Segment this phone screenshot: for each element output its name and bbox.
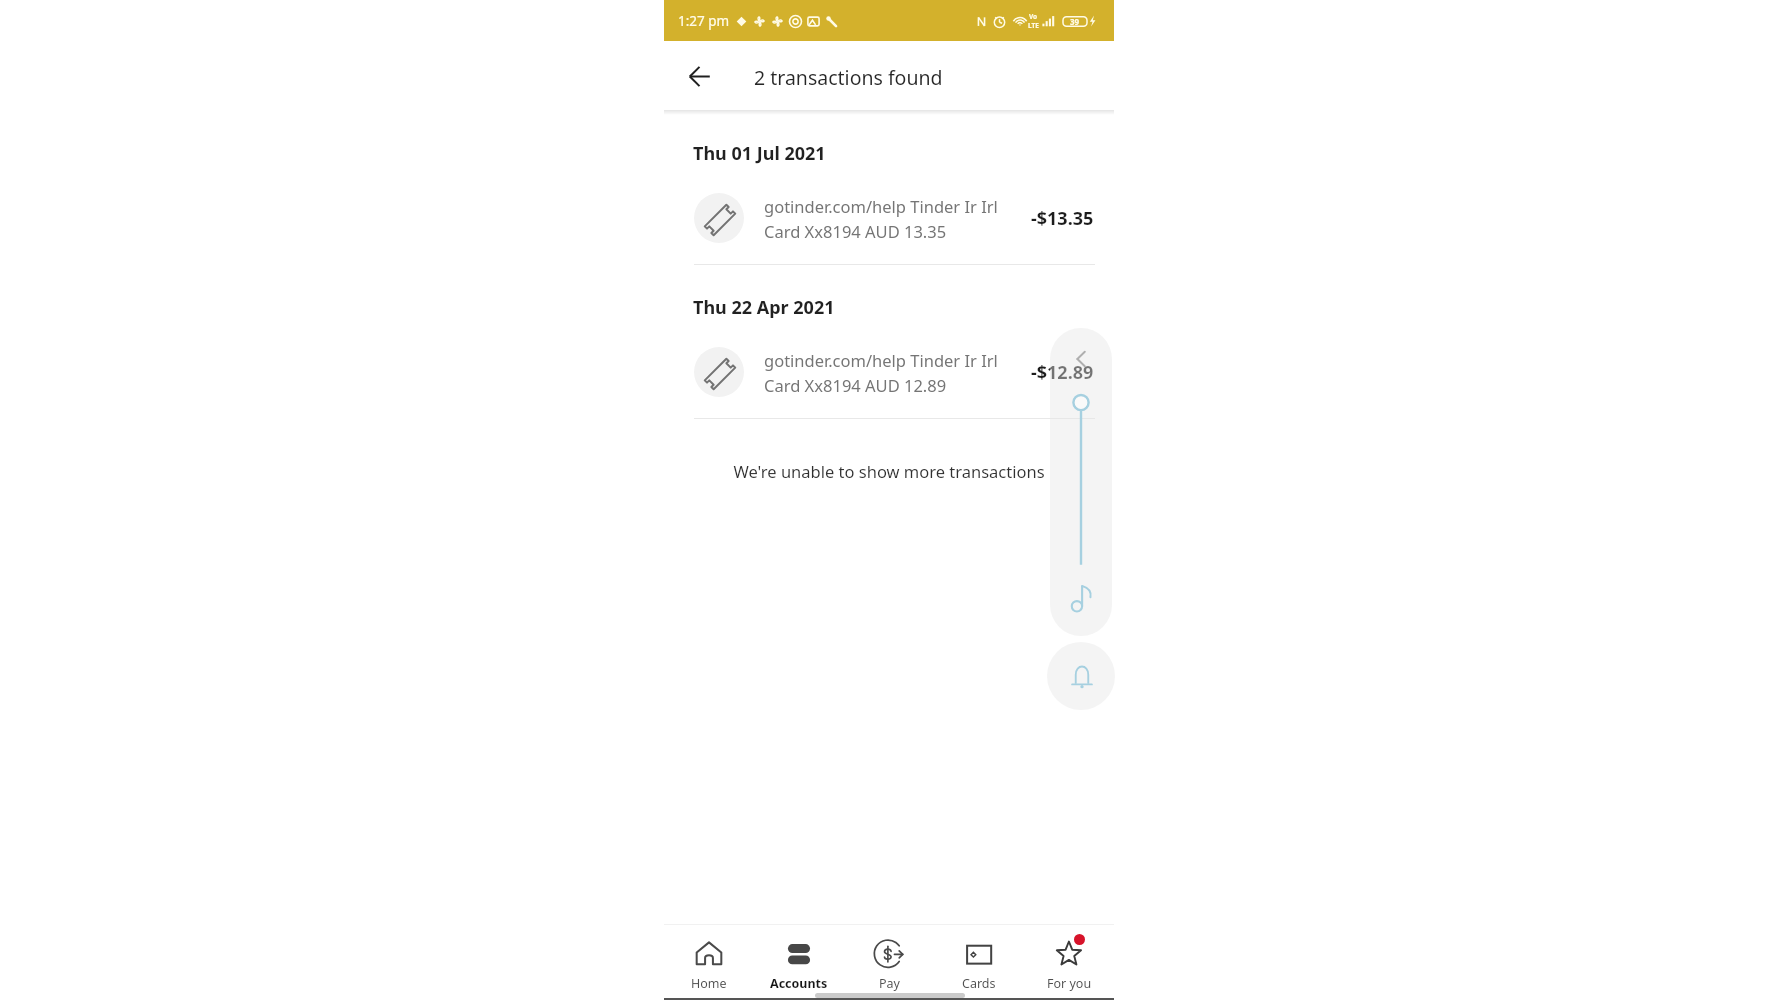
staticText: Thu 01 Jul 2021 xyxy=(693,141,826,166)
staticText: Home xyxy=(691,975,727,992)
staticText: Cards xyxy=(962,975,996,992)
button[interactable]: Volume xyxy=(1050,328,1112,636)
staticText: LTE xyxy=(1028,21,1039,30)
staticText: 1:27 pm xyxy=(678,12,730,30)
staticText: Pay xyxy=(879,975,900,992)
staticText: We're unable to show more transactions xyxy=(664,460,1114,482)
staticText: gotinder.com/help Tinder Ir Irl xyxy=(764,195,998,217)
staticText: Accounts xyxy=(770,975,828,992)
button[interactable]: Ring mode xyxy=(1047,642,1115,710)
staticText: Vo xyxy=(1029,12,1038,21)
button[interactable]: Cards xyxy=(934,925,1024,997)
staticText: 2 transactions found xyxy=(754,64,943,91)
button[interactable]: Pay xyxy=(844,925,934,997)
button[interactable]: Home xyxy=(664,925,754,997)
staticText: -$13.35 xyxy=(1031,206,1094,231)
button[interactable]: gotinder.com/help Tinder Ir Irl xyxy=(664,346,1114,398)
staticText: gotinder.com/help Tinder Ir Irl xyxy=(764,349,998,371)
button[interactable]: Back xyxy=(681,57,717,93)
button[interactable]: Accounts xyxy=(754,925,844,997)
staticText: For you xyxy=(1047,975,1092,992)
staticText: Card Xx8194 AUD 12.89 xyxy=(764,374,947,396)
button[interactable]: gotinder.com/help Tinder Ir Irl xyxy=(664,192,1114,244)
staticText: -$12.89 xyxy=(1031,360,1094,385)
staticText: 39 xyxy=(1070,16,1080,27)
staticText: Card Xx8194 AUD 13.35 xyxy=(764,220,947,242)
button[interactable]: For you xyxy=(1024,925,1114,997)
staticText: Thu 22 Apr 2021 xyxy=(693,295,835,320)
